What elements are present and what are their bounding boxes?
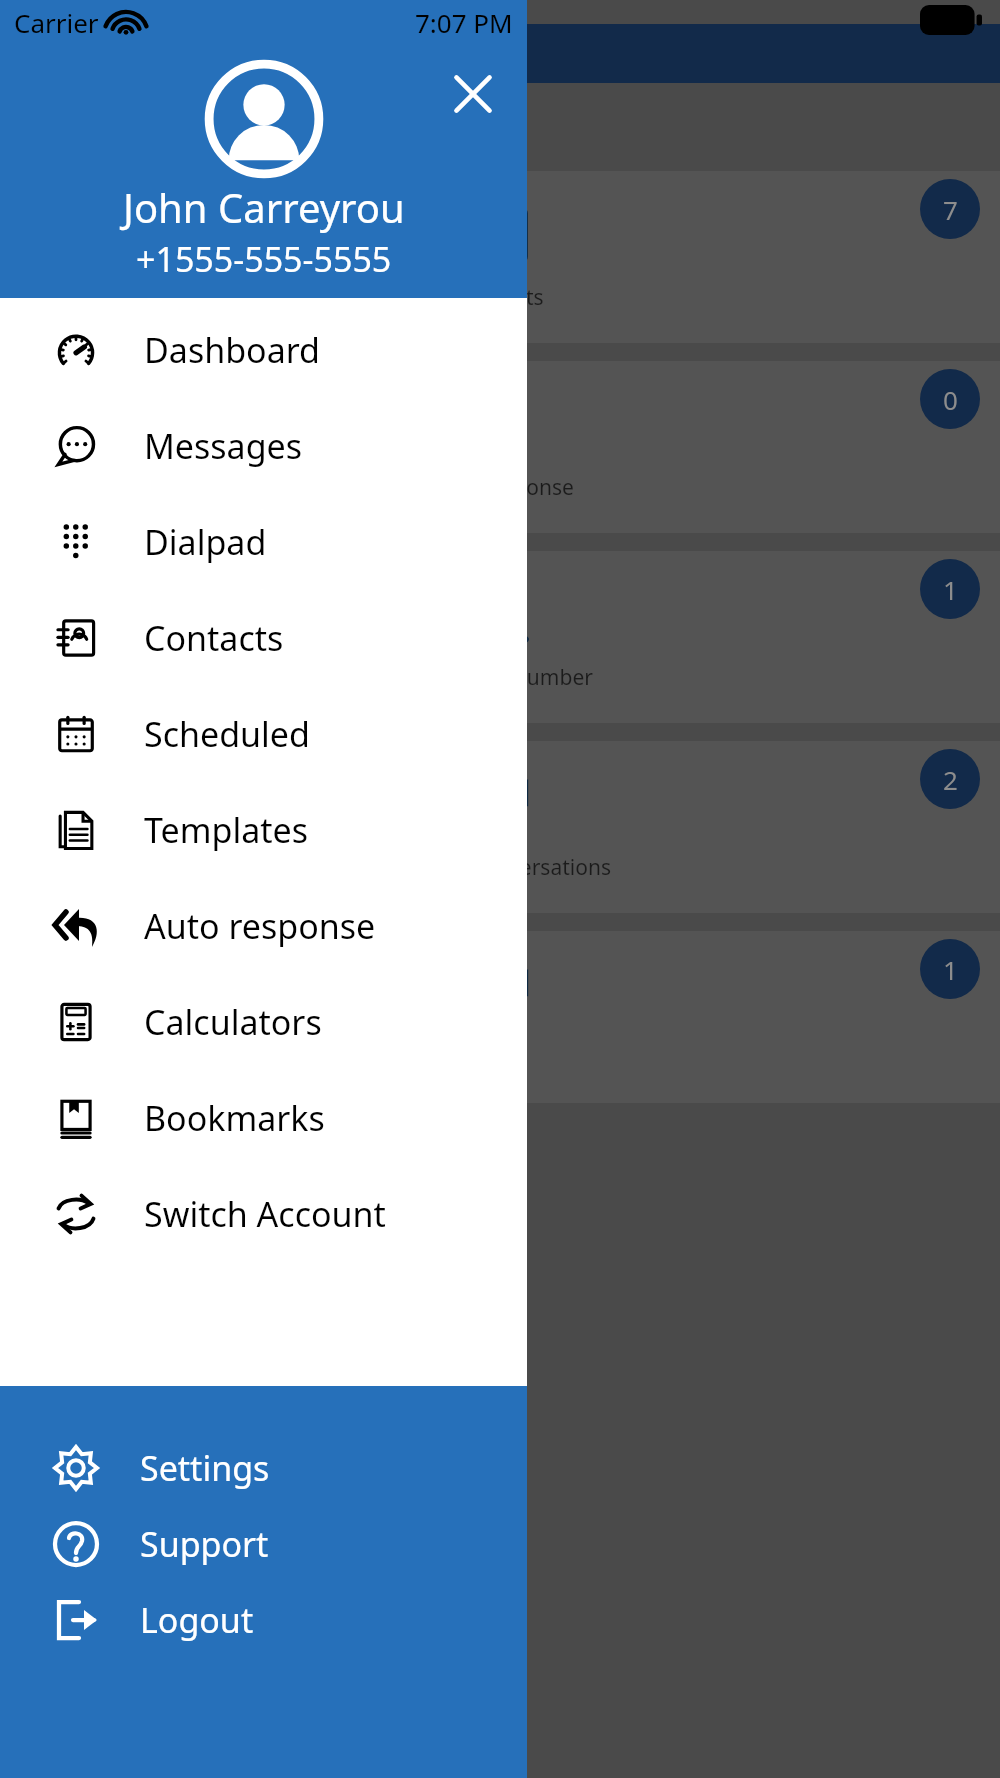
button[interactable]: Contacts xyxy=(0,171,1000,343)
button[interactable]: Logout xyxy=(0,1582,527,1658)
button[interactable]: No Phone Number xyxy=(0,551,1000,723)
staticText: No Phone Number xyxy=(408,663,593,692)
staticText: Support xyxy=(140,1521,269,1567)
staticText: 1 xyxy=(943,572,958,607)
staticText: Dashboard xyxy=(144,327,321,373)
staticText: Messages xyxy=(144,423,303,469)
staticText: +1555-555-5555 xyxy=(136,236,392,282)
staticText: Scheduled xyxy=(144,711,310,757)
button[interactable]: Auto Response xyxy=(0,361,1000,533)
staticText: Carrier xyxy=(14,5,99,40)
other: Battery xyxy=(920,5,982,35)
staticText: Auto Response xyxy=(426,473,574,502)
button[interactable]: Orphan Conversations xyxy=(0,741,1000,913)
staticText: Templates xyxy=(144,807,308,853)
button[interactable]: Dashboard xyxy=(0,302,527,398)
staticText: Dashboard xyxy=(255,33,411,74)
button[interactable]: Settings xyxy=(0,1430,527,1506)
staticText: Bookmarks xyxy=(144,1095,325,1141)
button[interactable]: Bookmarks xyxy=(0,1070,527,1166)
staticText: Settings xyxy=(140,1445,270,1491)
staticText: Active xyxy=(252,98,364,147)
button[interactable]: Dialpad xyxy=(0,494,527,590)
button[interactable]: Calculators xyxy=(0,974,527,1070)
staticText: Logout xyxy=(140,1597,254,1643)
button[interactable]: More xyxy=(0,931,1000,1103)
button[interactable]: Auto response xyxy=(0,878,527,974)
staticText: 0 xyxy=(943,382,958,417)
staticText: 7 xyxy=(943,192,958,227)
button[interactable]: Messages xyxy=(0,398,527,494)
staticText: Calculators xyxy=(144,999,322,1045)
button[interactable]: Support xyxy=(0,1506,527,1582)
staticText: John Carreyrou xyxy=(123,180,405,234)
staticText: Contacts xyxy=(144,615,284,661)
staticText: 1 xyxy=(943,952,958,987)
button[interactable]: Scheduled xyxy=(0,686,527,782)
staticText: 2 xyxy=(943,762,958,797)
staticText: Contacts xyxy=(457,283,544,312)
button[interactable]: Contacts xyxy=(0,590,527,686)
button[interactable]: Templates xyxy=(0,782,527,878)
staticText: Switch Account xyxy=(144,1191,386,1237)
staticText: Auto response xyxy=(144,903,376,949)
staticText: Dialpad xyxy=(144,519,267,565)
button[interactable]: Close drawer xyxy=(441,62,505,126)
staticText: Orphan Conversations xyxy=(389,853,611,882)
button[interactable]: Switch Account xyxy=(0,1166,527,1262)
staticText: 7:07 PM xyxy=(415,5,513,40)
